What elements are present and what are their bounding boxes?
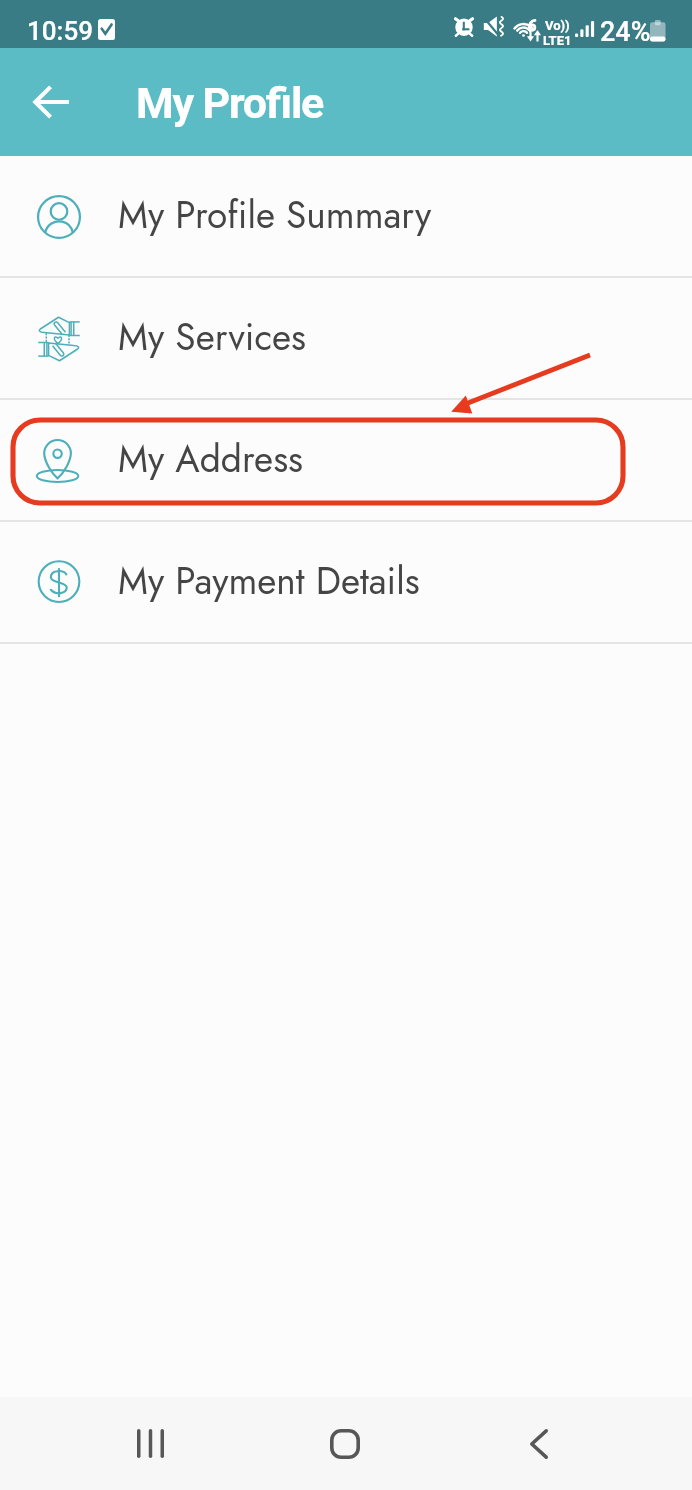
staticText: 10:59 [27, 16, 93, 46]
button[interactable]: My Services [0, 278, 692, 400]
staticText: My Services [118, 310, 307, 363]
staticText: Vo)) [545, 18, 570, 33]
button[interactable]: My Payment Details [0, 522, 692, 644]
button[interactable]: Back [493, 1397, 585, 1490]
staticText: 24% [600, 16, 651, 48]
button[interactable]: Home [299, 1397, 391, 1490]
staticText: My Address [118, 432, 303, 485]
staticText: My Profile [136, 78, 324, 128]
button[interactable]: My Address [0, 400, 692, 522]
staticText: My Payment Details [118, 554, 420, 607]
button[interactable]: My Profile Summary [0, 156, 692, 278]
staticText: My Profile Summary [118, 188, 432, 241]
staticText: LTE1 [543, 33, 572, 48]
button[interactable]: Recent apps [104, 1397, 196, 1490]
button[interactable]: Navigate back [16, 66, 88, 138]
